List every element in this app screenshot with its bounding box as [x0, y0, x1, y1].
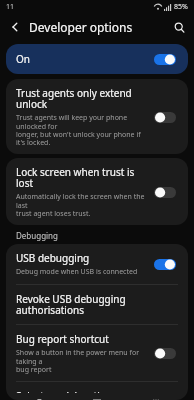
button[interactable] [152, 51, 178, 67]
staticText: Bug report shortcut [16, 332, 109, 346]
staticText: Debug mode when USB is connected [16, 267, 138, 277]
staticText: Show a button in the power menu for taki… [16, 348, 146, 374]
staticText: Lock screen when trust is lost [16, 165, 146, 190]
button[interactable]: On [6, 44, 188, 74]
button[interactable] [152, 184, 178, 200]
button[interactable] [152, 256, 178, 272]
button[interactable]: Revoke USB debugging authorisations [6, 285, 188, 324]
staticText: Automatically lock the screen when the l… [16, 192, 146, 218]
button[interactable]: Lock screen when trust is lost [6, 158, 188, 225]
button[interactable]: Select mock location app [6, 382, 188, 400]
staticText: Revoke USB debugging authorisations [16, 292, 178, 317]
staticText: Trust agents will keep your phone unlock… [16, 113, 146, 147]
staticText: 85% [174, 2, 188, 12]
staticText: Debugging [16, 230, 58, 241]
button[interactable]: Trust agents only extend unlock [6, 79, 188, 154]
staticText: Select mock location app [16, 389, 133, 393]
staticText: Trust agents only extend unlock [16, 86, 146, 111]
button[interactable]: Back [6, 18, 24, 36]
staticText: 11 [6, 2, 15, 12]
staticText: On [16, 52, 30, 66]
button[interactable]: Search [170, 18, 188, 36]
button[interactable]: Bug report shortcut [6, 325, 188, 381]
button[interactable] [152, 345, 178, 361]
button[interactable]: USB debugging [6, 244, 188, 284]
staticText: Developer options [29, 19, 133, 35]
staticText: USB debugging [16, 251, 90, 265]
button[interactable] [152, 109, 178, 125]
